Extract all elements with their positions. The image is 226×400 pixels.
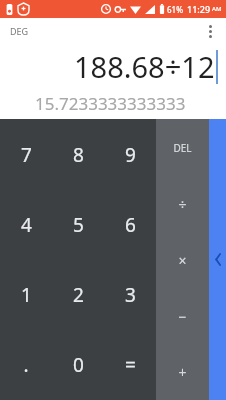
staticText: − bbox=[178, 307, 187, 326]
staticText: 8 bbox=[73, 142, 84, 168]
button[interactable]: 8 bbox=[52, 119, 104, 190]
button[interactable]: DEL bbox=[156, 119, 209, 176]
staticText: DEL bbox=[173, 141, 192, 155]
staticText: × bbox=[178, 251, 187, 270]
button[interactable]: − bbox=[156, 288, 209, 344]
button[interactable]: DEG bbox=[10, 25, 29, 37]
button[interactable]: More options bbox=[200, 21, 220, 41]
staticText: 1 bbox=[21, 282, 32, 308]
staticText: . bbox=[23, 352, 29, 378]
staticText: 7 bbox=[21, 142, 32, 168]
staticText: 0 bbox=[73, 352, 84, 378]
button[interactable]: 1 bbox=[0, 260, 52, 330]
button[interactable]: 6 bbox=[104, 190, 156, 260]
staticText: 3 bbox=[125, 282, 136, 308]
staticText: 9 bbox=[125, 142, 136, 168]
staticText: 6 bbox=[125, 212, 136, 238]
staticText: 15.7233333333333 bbox=[35, 92, 186, 115]
staticText: 11:29 bbox=[187, 3, 211, 15]
button[interactable]: Open advanced pad bbox=[209, 119, 226, 400]
staticText: 5 bbox=[73, 212, 84, 238]
button[interactable]: 5 bbox=[52, 190, 104, 260]
button[interactable]: 4 bbox=[0, 190, 52, 260]
staticText: 2 bbox=[73, 282, 84, 308]
staticText: AM bbox=[212, 5, 222, 13]
button[interactable]: ÷ bbox=[156, 176, 209, 232]
staticText: + bbox=[178, 363, 187, 382]
button[interactable]: 3 bbox=[104, 260, 156, 330]
button[interactable]: = bbox=[104, 330, 156, 400]
button[interactable]: × bbox=[156, 232, 209, 288]
button[interactable]: 0 bbox=[52, 330, 104, 400]
staticText: ÷ bbox=[178, 195, 187, 214]
button[interactable]: . bbox=[0, 330, 52, 400]
button[interactable]: 9 bbox=[104, 119, 156, 190]
button[interactable]: 2 bbox=[52, 260, 104, 330]
staticText: 4 bbox=[21, 212, 32, 238]
staticText: = bbox=[125, 352, 136, 378]
staticText: DEG bbox=[10, 25, 29, 37]
button[interactable]: 7 bbox=[0, 119, 52, 190]
staticText: 61% bbox=[167, 4, 183, 15]
staticText: 188.68÷12 bbox=[74, 47, 215, 86]
button[interactable]: + bbox=[156, 344, 209, 400]
